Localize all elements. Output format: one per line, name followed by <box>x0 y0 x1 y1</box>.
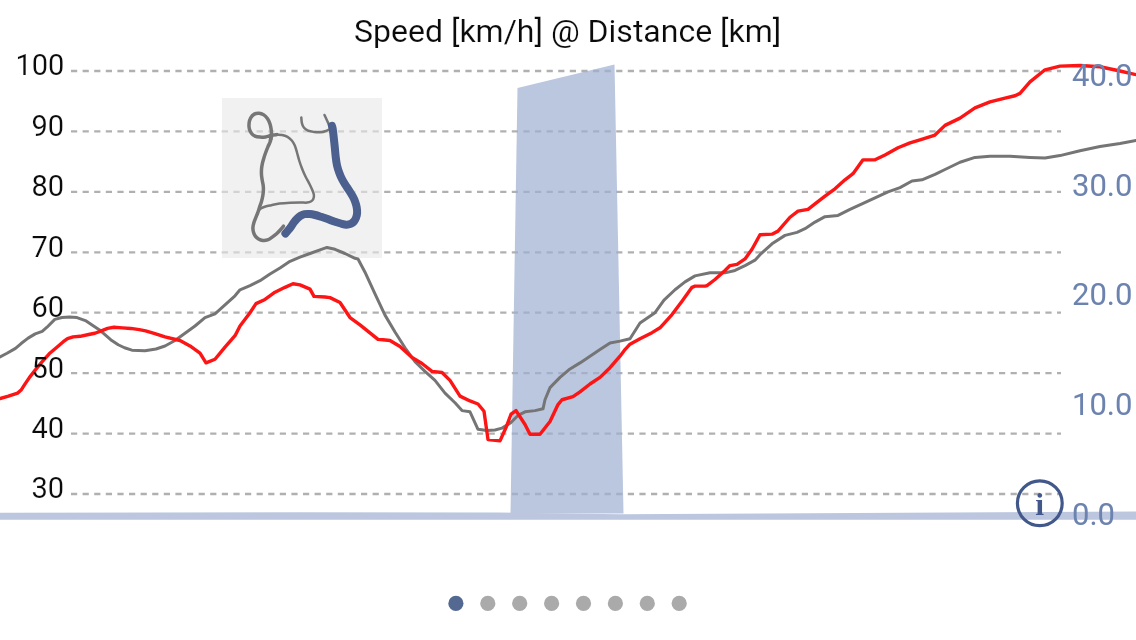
button[interactable]: Chart information <box>1017 480 1063 526</box>
